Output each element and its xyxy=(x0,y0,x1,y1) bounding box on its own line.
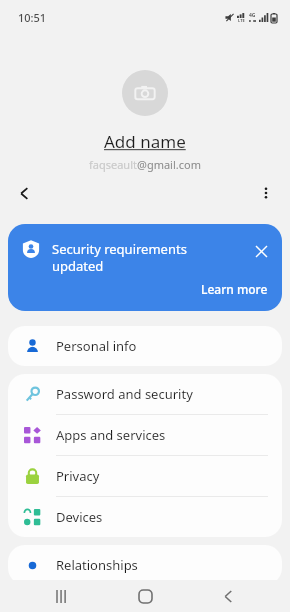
staticText: Personal info xyxy=(56,337,137,355)
button[interactable]: Home xyxy=(124,580,166,612)
staticText: Apps and services xyxy=(56,426,166,444)
button[interactable]: Devices xyxy=(8,497,282,537)
button[interactable]: Learn more xyxy=(201,281,268,297)
button[interactable]: Privacy xyxy=(8,456,282,496)
staticText: LTE xyxy=(238,18,245,23)
staticText: Devices xyxy=(56,508,103,526)
button[interactable]: More options xyxy=(250,177,282,209)
staticText: faqseault xyxy=(89,157,137,172)
staticText: Security requirements updated xyxy=(52,240,244,275)
staticText: Privacy xyxy=(56,467,100,485)
button[interactable]: Dismiss xyxy=(250,240,272,262)
button[interactable]: Personal info xyxy=(8,326,282,366)
button[interactable]: Back xyxy=(207,580,249,612)
button[interactable]: Change profile photo xyxy=(122,70,168,116)
button[interactable]: Apps and services xyxy=(8,415,282,455)
staticText: Learn more xyxy=(201,281,268,297)
staticText: Relationships xyxy=(56,556,138,574)
staticText: 4G xyxy=(249,12,256,19)
staticText: 10:51 xyxy=(18,10,47,25)
button[interactable]: Relationships xyxy=(8,545,282,585)
button[interactable]: Recent apps xyxy=(41,580,83,612)
staticText: @gmail.com xyxy=(137,157,201,172)
button[interactable]: Add name xyxy=(104,130,186,153)
staticText: Password and security xyxy=(56,385,193,403)
button[interactable]: Security requirements updated xyxy=(8,224,282,311)
button[interactable]: Back xyxy=(8,177,40,209)
button[interactable]: Password and security xyxy=(8,374,282,414)
